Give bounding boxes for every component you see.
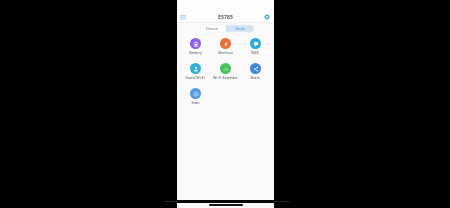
button[interactable]: Wi-Fi Extender bbox=[210, 59, 240, 84]
button[interactable]: Battery bbox=[180, 34, 210, 59]
staticText: SMS bbox=[251, 50, 259, 55]
staticText: Scan bbox=[191, 100, 200, 105]
staticText: Guest Wi-Fi bbox=[185, 75, 205, 80]
button[interactable]: Scan bbox=[180, 84, 210, 109]
staticText: Tools bbox=[235, 26, 245, 31]
staticText: E5785 bbox=[218, 14, 234, 21]
button[interactable]: Settings bbox=[262, 12, 271, 21]
staticText: Share bbox=[250, 75, 260, 80]
staticText: Wi-Fi Extender bbox=[213, 75, 238, 80]
staticText: Battery bbox=[189, 50, 202, 55]
button[interactable]: Device bbox=[198, 25, 226, 32]
button[interactable]: SMS bbox=[240, 34, 270, 59]
staticText: Shortcut bbox=[218, 50, 233, 55]
button[interactable]: Share bbox=[240, 59, 270, 84]
staticText: Device bbox=[206, 26, 219, 31]
button[interactable]: Shortcut bbox=[210, 34, 240, 59]
button[interactable]: Menu bbox=[178, 12, 188, 22]
button[interactable]: Guest Wi-Fi bbox=[180, 59, 210, 84]
button[interactable]: Tools bbox=[226, 25, 254, 32]
